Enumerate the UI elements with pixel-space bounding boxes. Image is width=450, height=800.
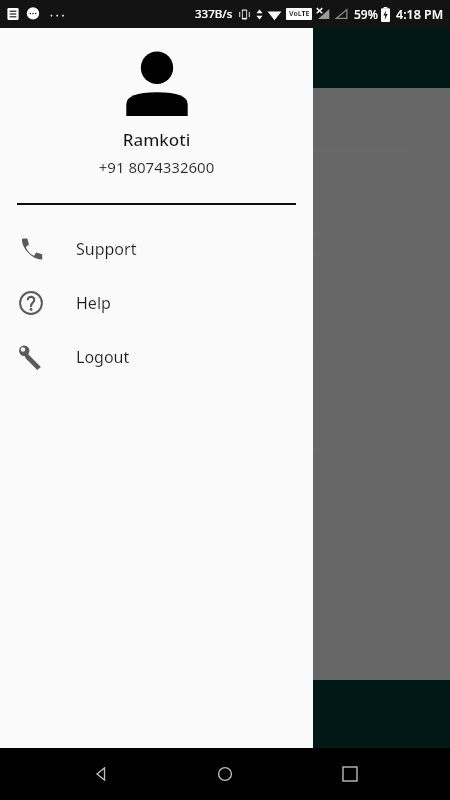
staticText: VoLTE: [289, 9, 310, 19]
staticText: · · ·: [50, 7, 65, 22]
staticText: 4:18 PM: [396, 6, 444, 23]
button[interactable]: Transactions: [20, 146, 412, 235]
button[interactable]: Activated: [20, 361, 412, 451]
button[interactable]: Recent apps: [326, 750, 374, 798]
staticText: Ramkoti: [0, 128, 313, 151]
button[interactable]: Completed: [20, 253, 412, 344]
staticText: Logout: [76, 346, 130, 368]
staticText: Help: [76, 292, 111, 314]
staticText: +91 8074332600: [0, 157, 313, 177]
staticText: 337B/s: [195, 6, 233, 22]
other: Profile avatar: [124, 42, 190, 120]
staticText: 59%: [354, 6, 378, 22]
button[interactable]: Help: [0, 276, 313, 330]
button[interactable]: Home: [201, 750, 249, 798]
staticText: SELECT DATE RANGE: [20, 110, 157, 128]
button[interactable]: Back: [77, 750, 125, 798]
staticText: Completed: [36, 289, 114, 309]
staticText: Support: [76, 238, 137, 260]
button[interactable]: Logout: [0, 330, 313, 384]
button[interactable]: Support: [0, 222, 313, 276]
